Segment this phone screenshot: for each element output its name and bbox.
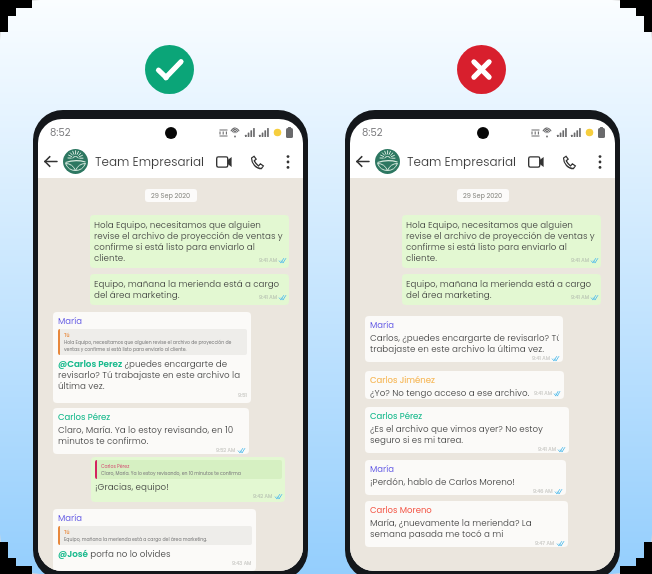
staticText: Claro, María. Ya lo estoy revisando, en … [58, 424, 234, 447]
staticText: María [58, 512, 83, 524]
staticText: Team Empresarial [407, 153, 517, 170]
staticText: Equipo, mañana la merienda está a cargo … [406, 278, 592, 301]
button[interactable]: Correct [145, 45, 194, 94]
staticText: Hola Equipo, necesitamos que alguien rev… [94, 219, 283, 264]
staticText: ¡Gracias, equipo! [95, 481, 169, 493]
button[interactable]: Incorrect [457, 45, 506, 94]
staticText: Carlos Jiménez [370, 374, 435, 386]
staticText: 8:52 [362, 125, 383, 139]
staticText: Tú [64, 529, 70, 535]
button[interactable]: More options [279, 153, 297, 171]
button[interactable]: Call [559, 151, 580, 172]
staticText: Claro, María. Ya lo estoy revisando, en … [101, 470, 241, 476]
staticText: ¿Es el archivo que vimos ayer? No estoy … [370, 423, 544, 446]
button[interactable]: Video call [213, 151, 234, 172]
staticText: Hola Equipo, necesitamos que alguien rev… [406, 219, 595, 264]
staticText: Carlos Pérez [370, 410, 423, 422]
staticText: @José porfa no lo olvides [58, 548, 171, 560]
staticText: @Carlos Perez ¿puedes encargarte de revi… [58, 358, 241, 392]
staticText: 9:41 AM [532, 355, 550, 362]
staticText: 9:46 AM [533, 488, 553, 495]
staticText: 9:41 AM [538, 446, 556, 453]
staticText: 9:52 AM [216, 447, 236, 454]
staticText: ¡Perdón, hablo de Carlos Moreno! [370, 476, 515, 488]
staticText: 9:47 AM [535, 540, 555, 547]
staticText: 9:41 AM [571, 294, 589, 301]
staticText: Carlos, ¿puedes encargarte de revisarlo?… [370, 332, 559, 355]
staticText: ¿Yo? No tengo acceso a ese archivo. [370, 387, 530, 399]
staticText: María [58, 315, 83, 327]
staticText: María [370, 319, 395, 331]
staticText: Hola Equipo, necesitamos que alguien rev… [64, 339, 232, 352]
staticText: Carlos Pérez [101, 463, 130, 469]
button[interactable]: Back [352, 151, 373, 172]
button[interactable]: More options [591, 153, 609, 171]
staticText: Team Empresarial [95, 153, 205, 170]
staticText: Carlos Moreno [370, 504, 432, 516]
staticText: 9:41 AM [259, 294, 277, 301]
staticText: María [370, 463, 395, 475]
staticText: Equipo, mañana la merienda está a cargo … [64, 536, 208, 542]
staticText: 9:41 AM [259, 257, 277, 264]
staticText: 9:41 AM [571, 257, 589, 264]
staticText: 9:43 AM [232, 560, 252, 567]
staticText: 9:51 [238, 392, 247, 399]
staticText: 8:52 [50, 125, 71, 139]
staticText: 29 Sep 2020 [151, 191, 191, 200]
staticText: Equipo, mañana la merienda está a cargo … [94, 278, 280, 301]
staticText: Carlos Pérez [58, 411, 111, 423]
button[interactable]: Call [247, 151, 268, 172]
staticText: 29 Sep 2020 [463, 191, 503, 200]
staticText: María, ¿nuevamente la merienda? La seman… [370, 517, 532, 540]
button[interactable]: Back [40, 151, 61, 172]
button[interactable]: Video call [525, 151, 546, 172]
staticText: 9:41 AM [534, 390, 552, 397]
staticText: 9:42 AM [253, 493, 273, 500]
staticText: Tú [64, 332, 70, 338]
